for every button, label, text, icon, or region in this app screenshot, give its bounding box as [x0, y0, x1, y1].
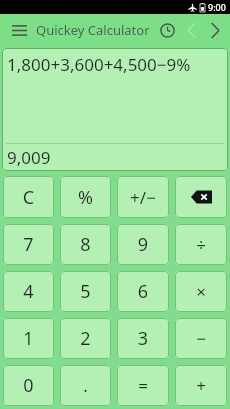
staticText: 0 [3, 373, 54, 398]
staticText: ÷ [175, 233, 227, 256]
button[interactable]: 5 [60, 271, 111, 312]
button[interactable]: 2 [60, 318, 111, 359]
button[interactable]: History [156, 19, 178, 41]
staticText: 2 [60, 326, 111, 351]
button[interactable]: = [117, 365, 169, 406]
staticText: 3 [117, 326, 169, 351]
button[interactable]: Previous [178, 17, 204, 43]
staticText: × [175, 280, 227, 303]
staticText: 8 [60, 232, 111, 257]
staticText: 4 [3, 279, 54, 304]
button[interactable]: 1,800+3,600+4,500−9% [2, 48, 228, 171]
button[interactable]: 7 [3, 224, 54, 265]
staticText: . [60, 374, 111, 397]
staticText: 5 [60, 279, 111, 304]
button[interactable]: C [3, 176, 54, 218]
staticText: 7 [3, 232, 54, 257]
button[interactable]: 3 [117, 318, 169, 359]
button[interactable]: 0 [3, 365, 54, 406]
staticText: +/− [117, 186, 169, 209]
button[interactable]: Backspace [175, 176, 227, 218]
staticText: % [60, 185, 111, 210]
staticText: 9,009 [7, 146, 51, 169]
button[interactable]: × [175, 271, 227, 312]
staticText: 9:00 [208, 1, 226, 13]
button[interactable]: Next [208, 17, 222, 43]
staticText: 1,800+3,600+4,500−9% [7, 53, 191, 76]
button[interactable]: 1 [3, 318, 54, 359]
button[interactable]: Menu [8, 19, 30, 41]
staticText: 1 [3, 326, 54, 351]
button[interactable]: − [175, 318, 227, 359]
staticText: + [175, 374, 227, 397]
button[interactable]: . [60, 365, 111, 406]
button[interactable]: 8 [60, 224, 111, 265]
button[interactable]: + [175, 365, 227, 406]
staticText: 6 [117, 279, 169, 304]
button[interactable]: 4 [3, 271, 54, 312]
staticText: = [117, 374, 169, 397]
staticText: Quickey Calculator [36, 21, 150, 39]
button[interactable]: ÷ [175, 224, 227, 265]
staticText: − [175, 327, 227, 350]
button[interactable]: 9 [117, 224, 169, 265]
staticText: 9 [117, 232, 169, 257]
button[interactable]: +/− [117, 176, 169, 218]
button[interactable]: 6 [117, 271, 169, 312]
staticText: C [3, 185, 54, 210]
button[interactable]: % [60, 176, 111, 218]
